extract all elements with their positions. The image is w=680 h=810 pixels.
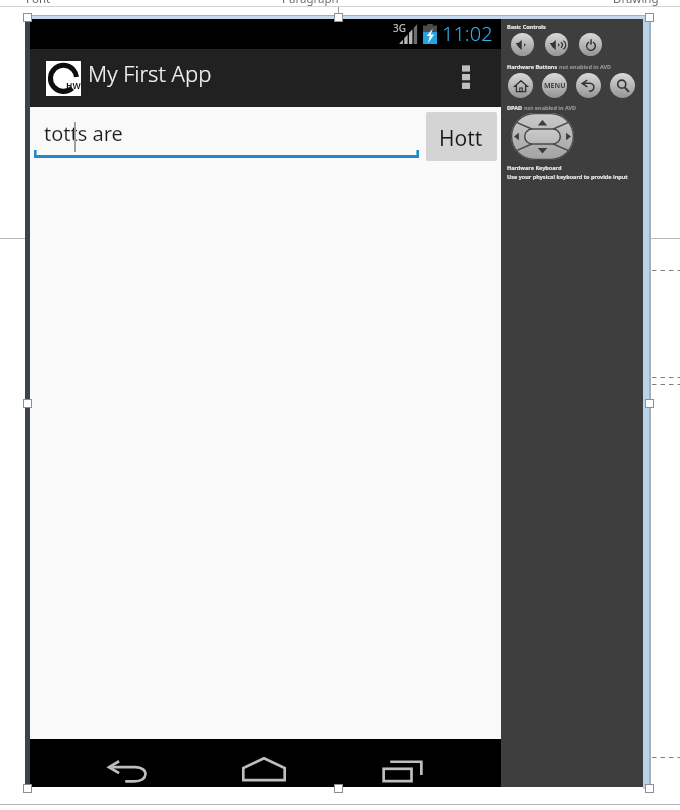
button[interactable]: Emulator control — [508, 73, 533, 98]
staticText: MENU — [544, 81, 566, 91]
button[interactable]: More options — [443, 49, 489, 107]
staticText: Drawing — [613, 0, 659, 7]
button[interactable]: Emulator control — [579, 33, 602, 56]
staticText: Hott — [439, 124, 483, 153]
staticText: totts are — [44, 120, 123, 147]
staticText: 3G — [393, 21, 406, 35]
staticText: DPAD — [507, 104, 524, 111]
staticText: Hardware Buttons — [507, 63, 559, 70]
button[interactable]: Emulator control — [542, 73, 567, 98]
button[interactable]: Emulator control — [576, 73, 601, 98]
button[interactable]: Hott — [426, 112, 497, 161]
button[interactable]: Emulator control — [610, 73, 635, 98]
staticText: not enabled in AVD — [559, 63, 612, 70]
staticText: Hardware Keyboard — [507, 164, 562, 171]
staticText: Use your physical keyboard to provide in… — [507, 173, 628, 180]
staticText: My First App — [88, 58, 212, 88]
button[interactable]: D-pad — [511, 113, 574, 160]
button[interactable]: Emulator control — [545, 33, 568, 56]
button[interactable]: Emulator control — [511, 33, 534, 56]
staticText: Font — [26, 0, 51, 7]
button[interactable]: Home — [209, 739, 319, 787]
staticText: 11:02 — [442, 20, 493, 47]
staticText: HW — [66, 80, 81, 92]
button[interactable]: Recent apps — [347, 739, 457, 787]
staticText: Basic Controls — [507, 23, 546, 30]
staticText: not enabled in AVD — [524, 104, 577, 111]
staticText: Paragraph — [282, 0, 339, 7]
button[interactable]: Back — [73, 739, 183, 787]
